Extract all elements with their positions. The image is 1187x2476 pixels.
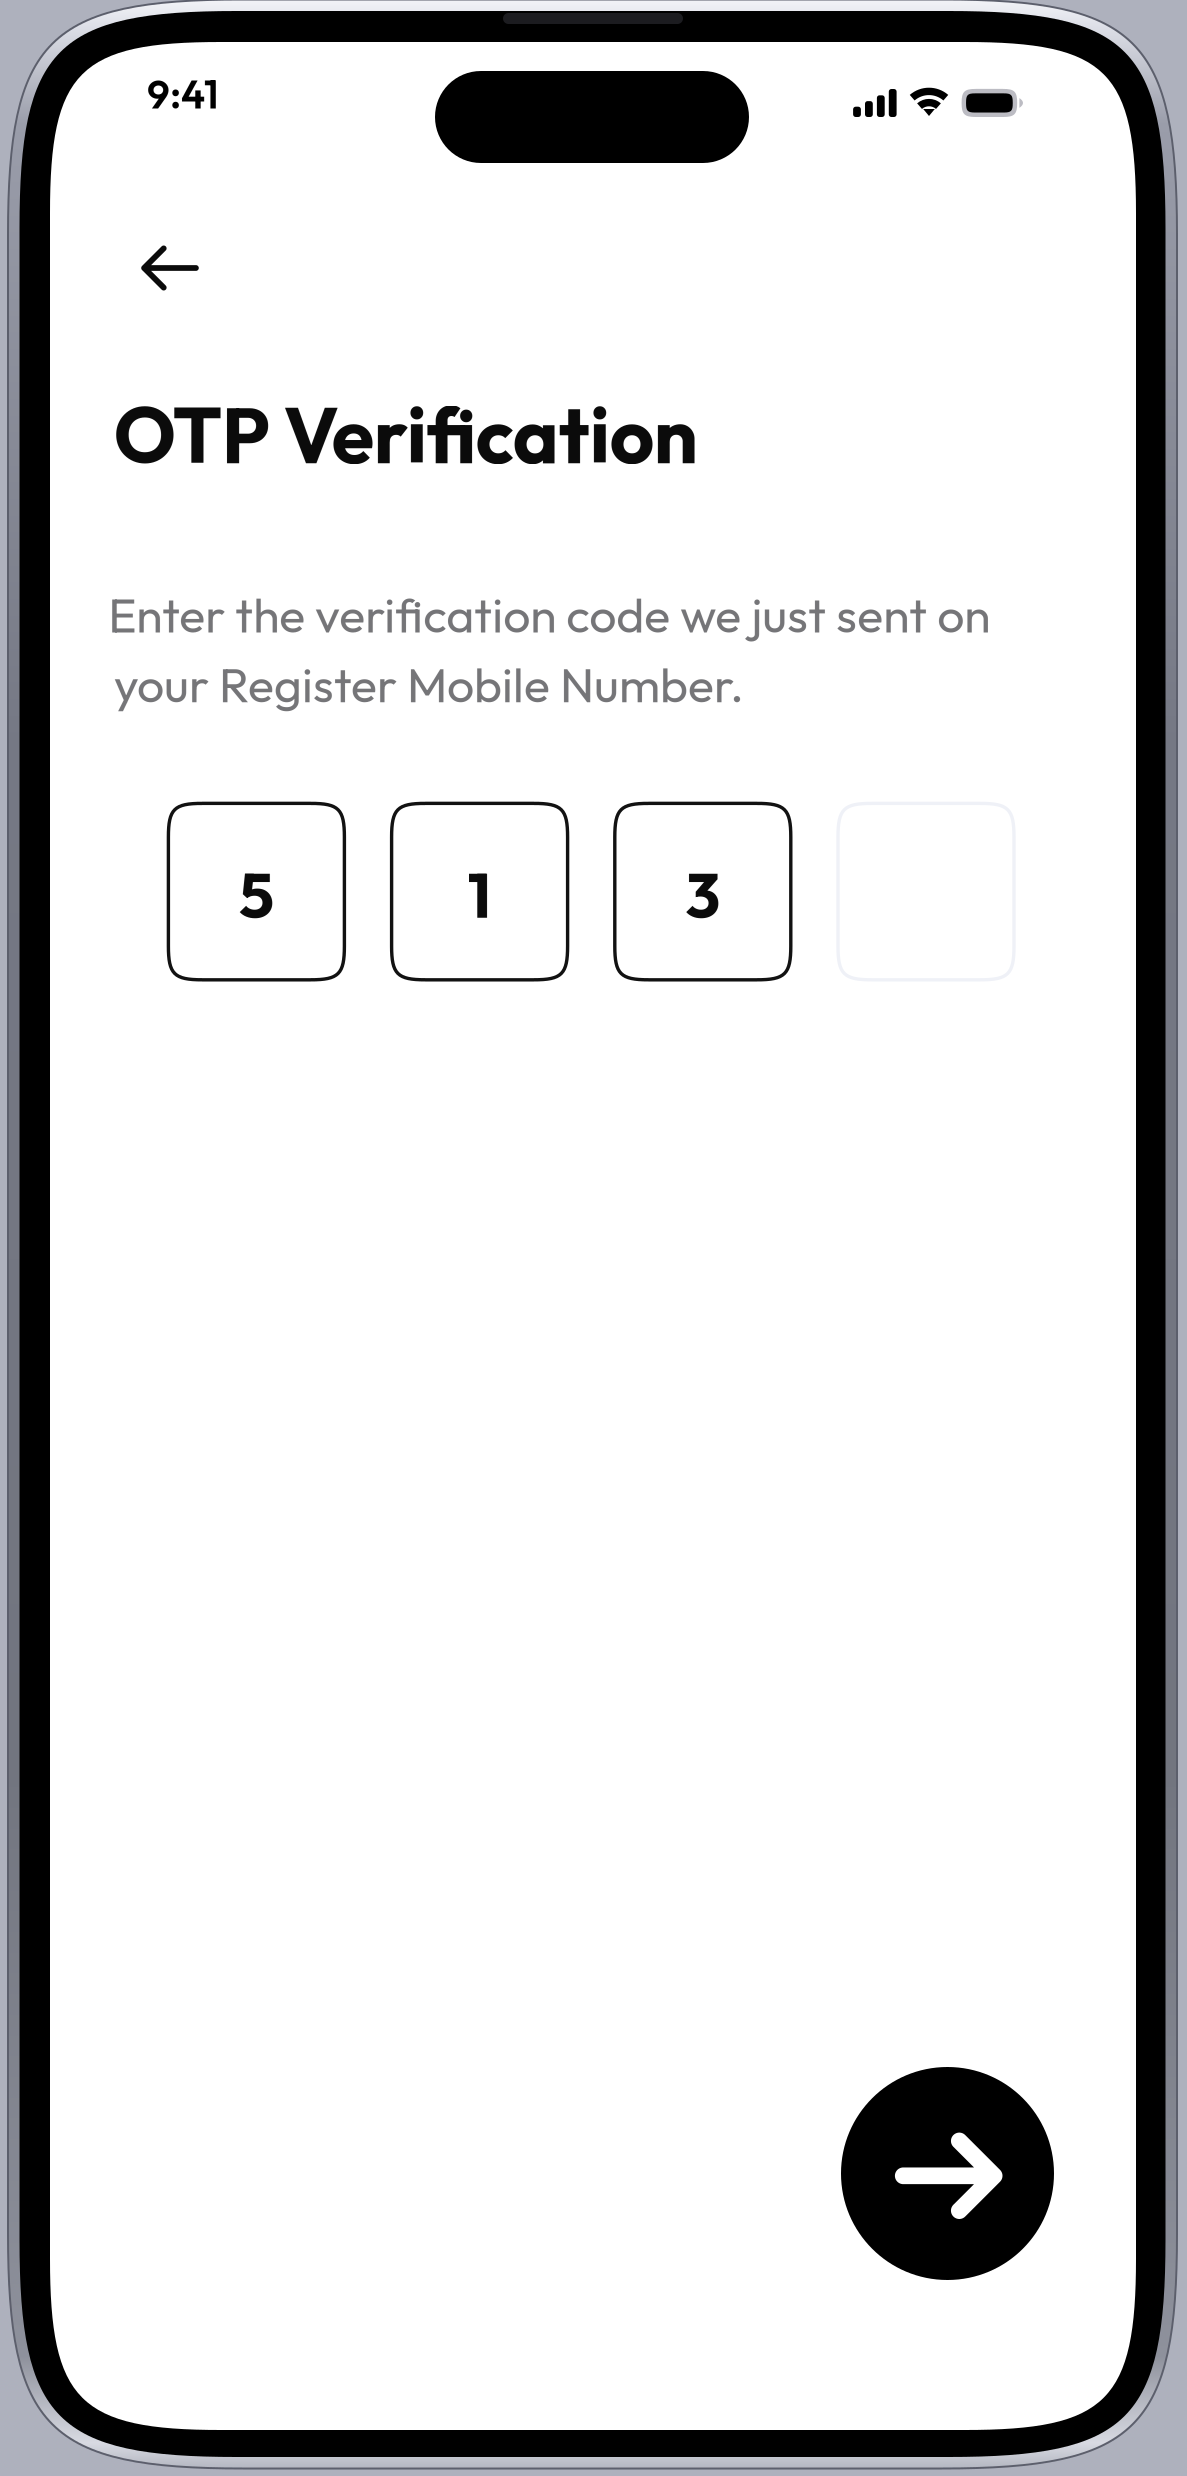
staticText: your Register Mobile Number. (114, 654, 744, 715)
staticText: 3 (685, 855, 720, 934)
staticText: 1 (468, 855, 492, 934)
staticText: 9:41 (147, 68, 219, 119)
button[interactable]: Continue (841, 2067, 1054, 2280)
button[interactable]: Back (81, 188, 259, 348)
staticText: OTP Verification (114, 386, 698, 483)
staticText: 5 (239, 855, 274, 934)
staticText: Enter the verification code we just sent… (108, 584, 990, 645)
